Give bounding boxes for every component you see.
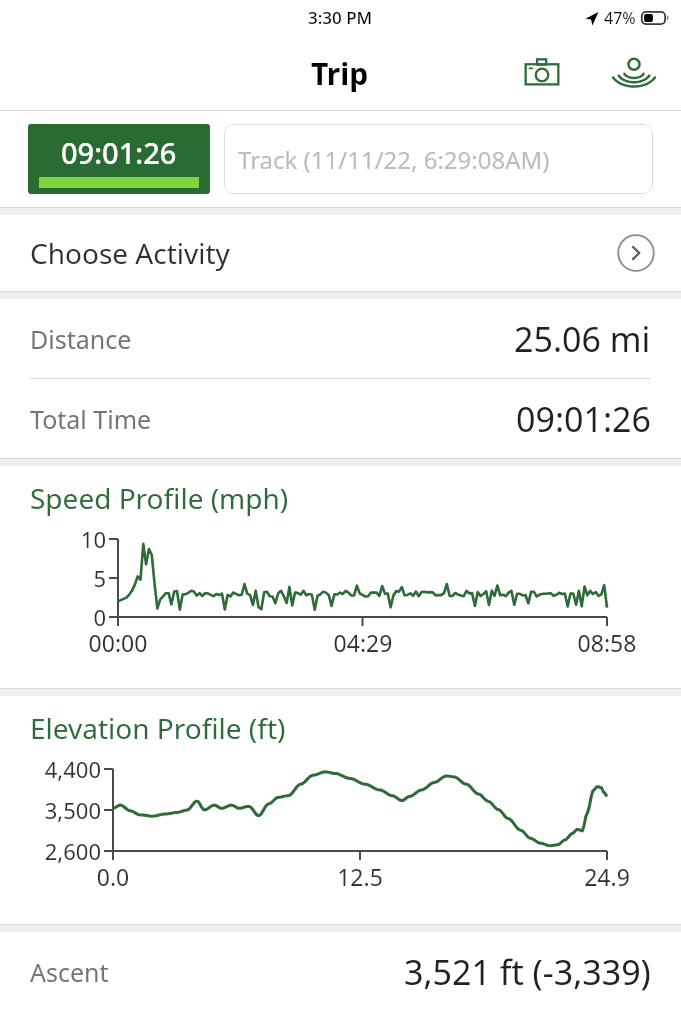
staticText: Trip — [311, 53, 369, 94]
button[interactable]: 09:01:26 — [28, 124, 210, 194]
staticText: Ascent — [30, 955, 404, 989]
staticText: 3,500 — [0, 795, 101, 825]
button[interactable]: Total Time — [0, 379, 681, 458]
staticText: Distance — [30, 322, 514, 356]
staticText: 5 — [0, 563, 106, 593]
staticText: Speed Profile (mph) — [30, 479, 289, 517]
staticText: 24.9 — [537, 861, 677, 892]
staticText: 00:00 — [48, 627, 188, 658]
button[interactable]: Distance — [0, 299, 681, 378]
staticText: 09:01:26 — [516, 396, 651, 442]
button[interactable]: Choose Activity — [0, 215, 681, 291]
staticText: 09:01:26 — [61, 133, 177, 172]
staticText: 08:58 — [537, 627, 677, 658]
staticText: 3:30 PM — [308, 6, 373, 29]
staticText: 25.06 mi — [514, 316, 651, 362]
staticText: 3,521 ft (-3,339) — [404, 949, 651, 995]
button[interactable]: Broadcast location — [605, 44, 663, 102]
staticText: 10 — [0, 524, 106, 554]
staticText: 0 — [0, 602, 106, 632]
staticText: 47% — [604, 7, 636, 29]
staticText: 12.5 — [290, 861, 430, 892]
staticText: 4,400 — [0, 754, 101, 784]
button[interactable]: Track (11/11/22, 6:29:08AM) — [224, 124, 653, 194]
staticText: Total Time — [30, 402, 516, 436]
staticText: 2,600 — [0, 836, 101, 866]
staticText: Track (11/11/22, 6:29:08AM) — [238, 143, 550, 176]
staticText: Elevation Profile (ft) — [30, 709, 286, 747]
staticText: 04:29 — [293, 627, 433, 658]
button[interactable]: Camera — [513, 44, 571, 102]
button[interactable]: Ascent — [0, 932, 681, 1011]
staticText: Choose Activity — [30, 234, 617, 272]
staticText: 0.0 — [43, 861, 183, 892]
